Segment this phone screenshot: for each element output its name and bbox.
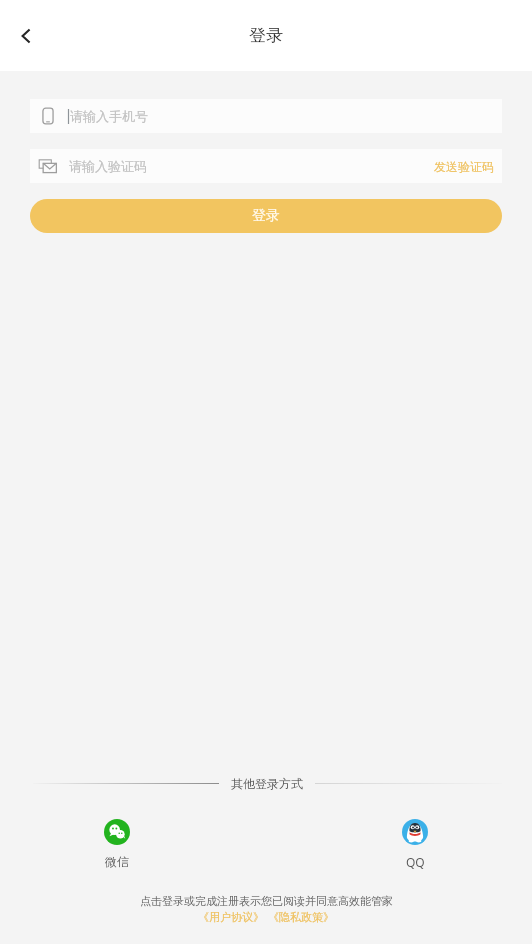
button[interactable]: 登录 — [30, 199, 502, 233]
button[interactable]: 《隐私政策》 — [268, 910, 334, 924]
staticText: 《隐私政策》 — [268, 910, 334, 924]
button[interactable]: 请输入手机号 — [30, 99, 502, 133]
staticText: QQ — [406, 854, 425, 870]
other: QQ login — [402, 819, 428, 845]
button[interactable]: 《用户协议》 — [198, 910, 264, 924]
staticText: 微信 — [105, 854, 129, 869]
button[interactable]: 发送验证码 — [426, 152, 502, 181]
staticText: 其他登录方式 — [231, 776, 303, 791]
staticText: 点击登录或完成注册表示您已阅读并同意高效能管家 — [140, 894, 393, 908]
staticText: 发送验证码 — [434, 159, 494, 174]
button[interactable]: WeChat login — [104, 819, 130, 869]
button[interactable]: QQ login — [402, 819, 428, 870]
button[interactable]: Back — [4, 14, 48, 58]
staticText: 《用户协议》 — [198, 910, 264, 924]
other: WeChat login — [104, 819, 130, 845]
staticText: 登录 — [249, 25, 283, 46]
staticText: 登录 — [252, 207, 280, 225]
staticText: 请输入手机号 — [70, 108, 148, 124]
staticText: 请输入验证码 — [69, 158, 426, 174]
